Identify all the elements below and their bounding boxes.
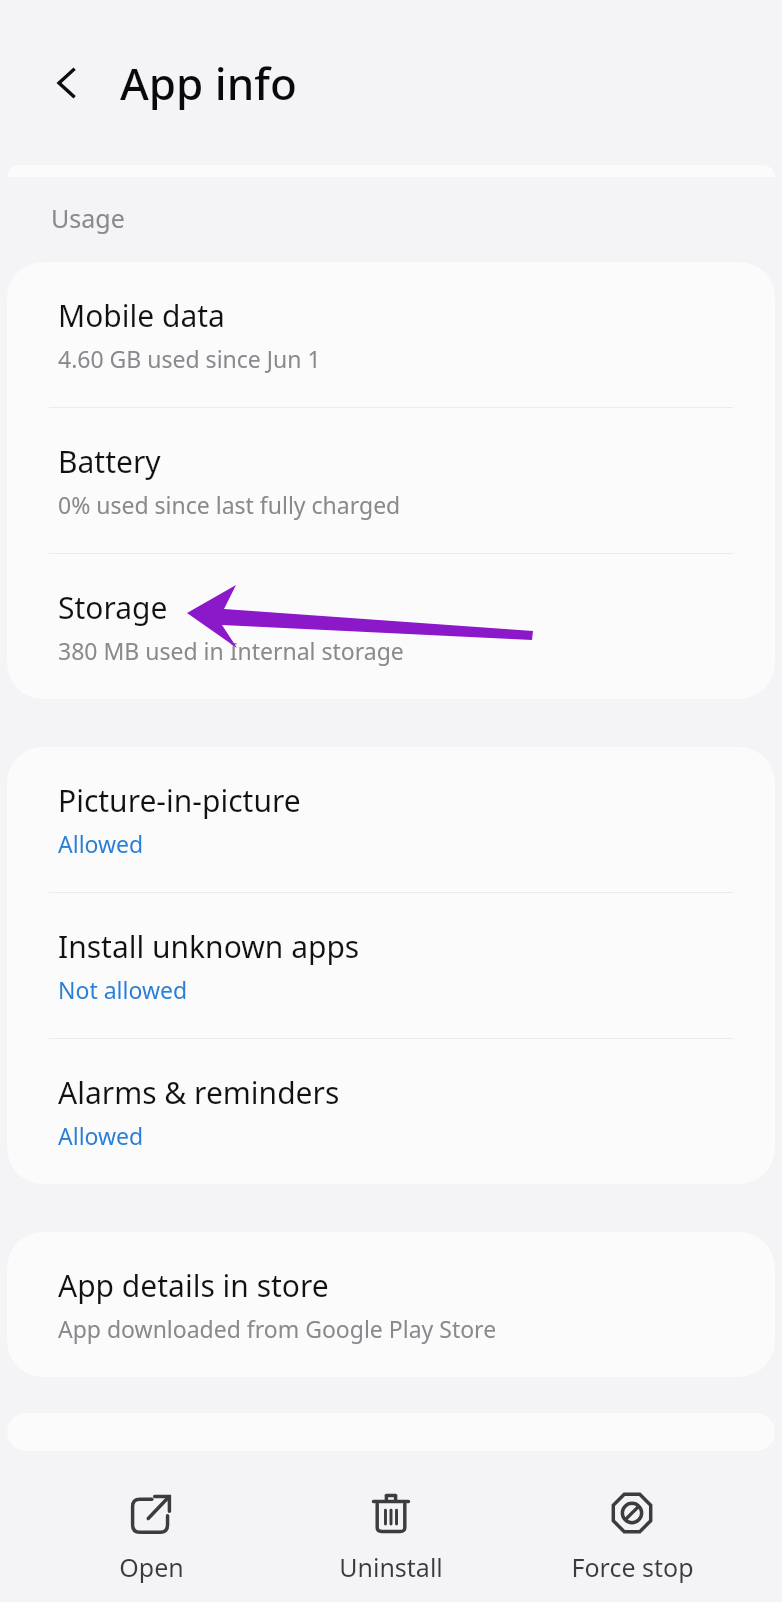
staticText: Picture-in-picture — [58, 780, 301, 821]
staticText: Usage — [51, 201, 125, 235]
staticText: Open — [119, 1550, 184, 1584]
staticText: Allowed — [58, 1120, 144, 1151]
staticText: App info — [120, 53, 297, 113]
staticText: App details in store — [58, 1265, 329, 1306]
staticText: Not allowed — [58, 974, 188, 1005]
button[interactable]: Back — [36, 52, 98, 114]
button[interactable]: Alarms & reminders — [7, 1039, 775, 1184]
button[interactable]: App details in store — [7, 1232, 775, 1377]
staticText: Uninstall — [339, 1550, 443, 1584]
staticText: Force stop — [571, 1550, 694, 1584]
button[interactable]: Open — [61, 1484, 241, 1590]
staticText: Battery — [58, 441, 161, 482]
staticText: Install unknown apps — [58, 926, 360, 967]
button[interactable]: Install unknown apps — [7, 893, 775, 1039]
button[interactable]: Storage — [7, 554, 775, 699]
button[interactable]: Force stop — [542, 1484, 722, 1590]
staticText: Storage — [58, 587, 168, 628]
staticText: Mobile data — [58, 295, 225, 336]
staticText: 380 MB used in Internal storage — [58, 635, 404, 666]
staticText: Alarms & reminders — [58, 1072, 340, 1113]
button[interactable]: Battery — [7, 408, 775, 554]
staticText: 4.60 GB used since Jun 1 — [58, 343, 321, 374]
staticText: App downloaded from Google Play Store — [58, 1313, 497, 1344]
staticText: 0% used since last fully charged — [58, 489, 401, 520]
staticText: Allowed — [58, 828, 144, 859]
button[interactable]: Picture-in-picture — [7, 747, 775, 893]
button[interactable]: Mobile data — [7, 262, 775, 408]
button[interactable]: Uninstall — [301, 1484, 481, 1590]
